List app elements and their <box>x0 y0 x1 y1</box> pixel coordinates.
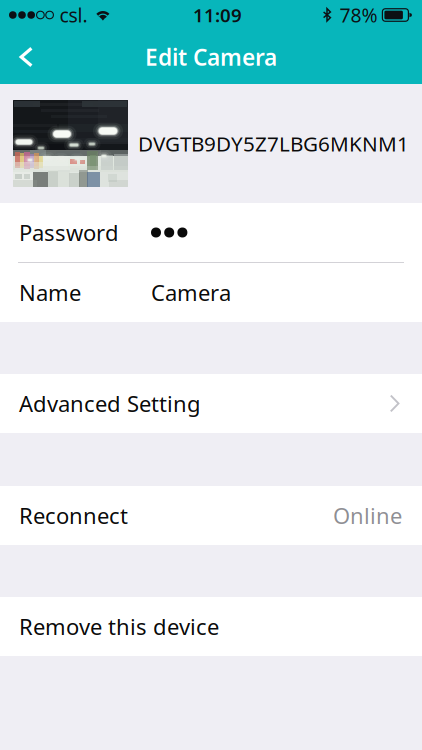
button[interactable]: Name <box>0 263 422 322</box>
staticText: DVGTB9DY5Z7LBG6MKNM1 <box>138 129 409 157</box>
button[interactable]: DVGTB9DY5Z7LBG6MKNM1 <box>0 84 422 203</box>
staticText: Name <box>19 277 81 307</box>
button[interactable]: Back <box>0 30 52 84</box>
staticText: Remove this device <box>19 611 219 641</box>
staticText: 78% <box>339 2 377 28</box>
staticText: Edit Camera <box>145 42 277 72</box>
staticText: Online <box>333 500 402 530</box>
staticText: Advanced Setting <box>19 388 201 418</box>
staticText: Password <box>19 217 119 247</box>
button[interactable]: Reconnect <box>0 486 422 545</box>
staticText: Reconnect <box>19 500 128 530</box>
button[interactable]: Remove this device <box>0 597 422 656</box>
staticText: 11:09 <box>193 3 242 27</box>
button[interactable]: Advanced Setting <box>0 374 422 433</box>
button[interactable]: Password <box>0 203 422 262</box>
staticText: csl. <box>59 2 87 28</box>
staticText: Camera <box>151 277 231 307</box>
